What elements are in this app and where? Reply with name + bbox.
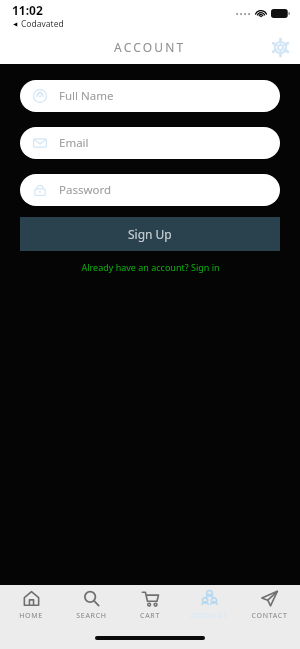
staticText: Sign Up xyxy=(128,226,172,242)
button[interactable]: SEARCH xyxy=(63,590,119,621)
staticText: ACCOUNT xyxy=(190,611,228,621)
staticText: 11:02 xyxy=(12,2,43,18)
button[interactable]: Sign Up xyxy=(20,217,280,251)
button[interactable]: CONTACT xyxy=(241,590,297,621)
button[interactable]: Already have an account? Sign in xyxy=(0,261,300,273)
button[interactable]: HOME xyxy=(3,590,59,621)
button[interactable]: Email xyxy=(20,127,280,159)
staticText: Full Name xyxy=(59,88,114,104)
button[interactable]: CART xyxy=(122,590,178,621)
staticText: Password xyxy=(59,182,112,198)
button[interactable]: Password xyxy=(20,174,280,206)
staticText: CONTACT xyxy=(251,611,288,621)
button[interactable]: ACCOUNT xyxy=(181,590,237,621)
staticText: SEARCH xyxy=(76,611,107,621)
staticText: Email xyxy=(59,135,89,151)
button[interactable]: Settings xyxy=(267,34,293,60)
staticText: Codavated xyxy=(21,18,64,30)
staticText: HOME xyxy=(19,611,43,621)
staticText: ACCOUNT xyxy=(114,39,186,55)
staticText: CART xyxy=(140,611,160,621)
staticText: Already have an account? Sign in xyxy=(81,261,220,273)
button[interactable]: Full Name xyxy=(20,80,280,112)
